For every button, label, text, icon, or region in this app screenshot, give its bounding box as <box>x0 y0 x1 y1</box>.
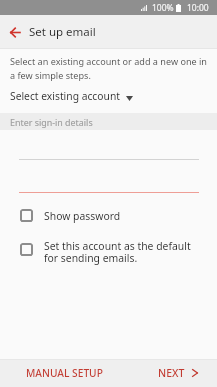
button[interactable]: Set this account as the default for send… <box>0 239 217 265</box>
button[interactable]: NEXT <box>146 359 217 387</box>
staticText: Set this account as the default for send… <box>44 239 191 265</box>
staticText: Set up email <box>29 24 96 40</box>
staticText: NEXT <box>158 366 185 380</box>
staticText: 10:00 <box>187 2 209 14</box>
staticText: 100% <box>152 2 174 14</box>
button[interactable]: MANUAL SETUP <box>0 359 129 387</box>
staticText: Enter sign-in details <box>10 116 93 128</box>
staticText: Show password <box>44 209 121 223</box>
staticText: Select existing account <box>10 89 120 103</box>
button[interactable]: Back <box>0 17 30 47</box>
button[interactable]: Select existing account <box>0 88 143 104</box>
button[interactable]: Show password <box>0 209 217 223</box>
staticText: Select an existing account or add a new … <box>10 55 207 81</box>
staticText: MANUAL SETUP <box>26 366 103 380</box>
